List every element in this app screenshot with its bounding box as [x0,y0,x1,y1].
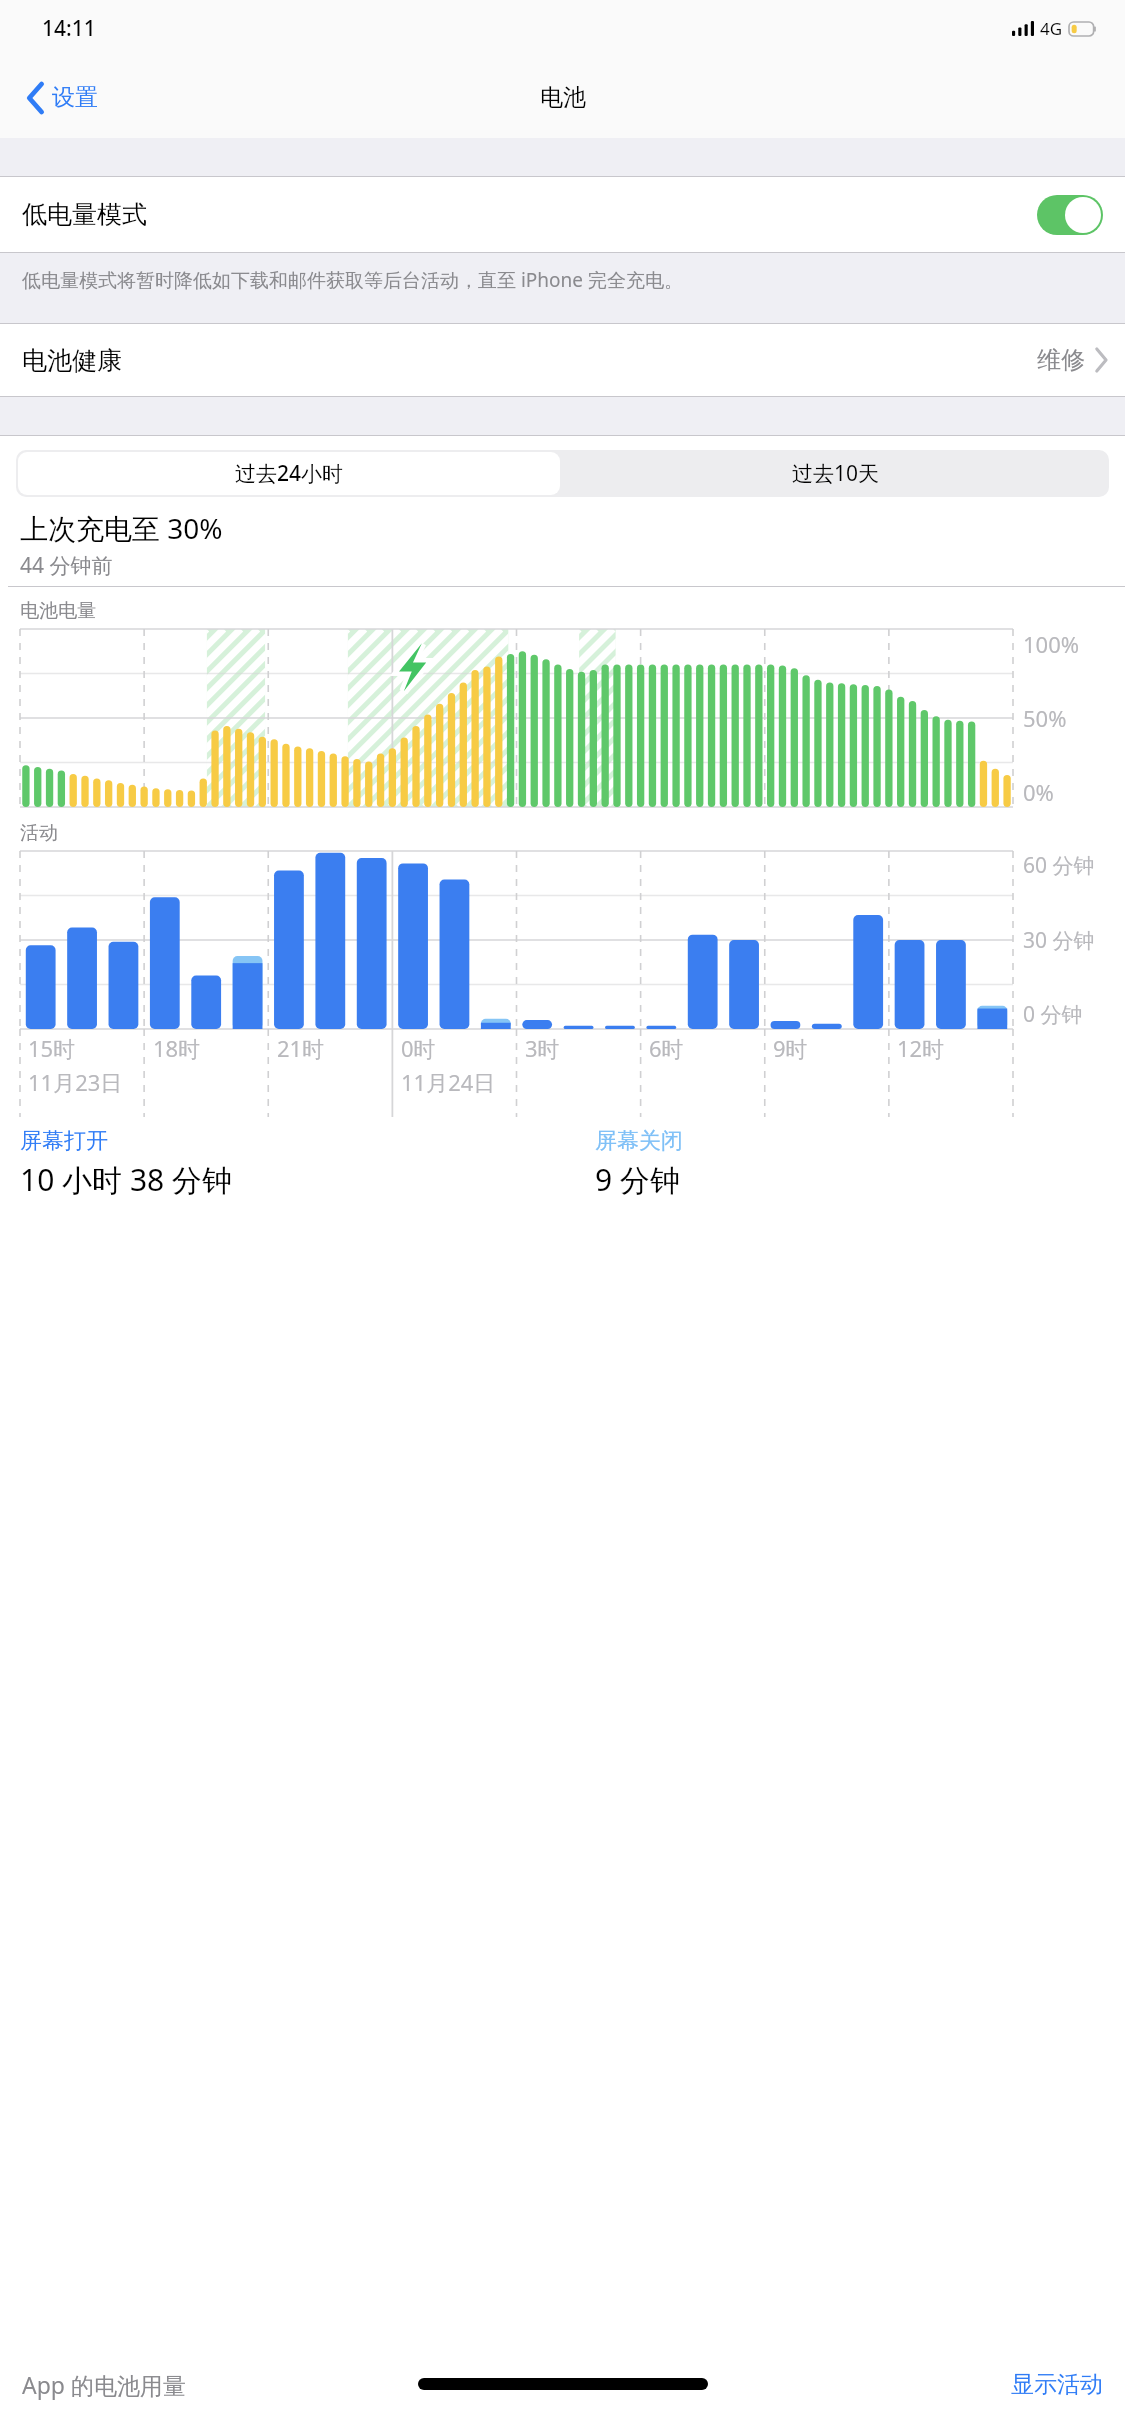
staticText: 50% [1023,703,1067,733]
staticText: 过去10天 [792,459,880,488]
button[interactable]: 过去24小时 [18,452,560,495]
button[interactable]: 屏幕关闭 [595,1127,1125,1200]
staticText: 维修 [1037,345,1085,375]
staticText: 电池健康 [22,345,122,376]
staticText: 12时 [897,1033,945,1063]
button[interactable]: 电池健康 [0,324,1125,396]
staticText: 30 分钟 [1023,926,1095,955]
button[interactable]: App 的电池用量 [22,2369,186,2400]
button[interactable]: 低电量模式开关 [1037,195,1103,235]
staticText: 0 分钟 [1023,1000,1083,1029]
staticText: 3时 [525,1033,560,1063]
staticText: 14:11 [42,14,96,43]
button[interactable]: 显示活动 [1011,2370,1103,2399]
staticText: 低电量模式将暂时降低如下载和邮件获取等后台活动，直至 iPhone 完全充电。 [22,267,683,293]
staticText: 屏幕打开 [20,1127,108,1155]
staticText: 4G [1040,17,1063,40]
staticText: 44 分钟前 [20,551,113,580]
staticText: 11月23日 [28,1067,123,1097]
staticText: 9 分钟 [595,1159,680,1200]
staticText: 15时 [28,1033,76,1063]
staticText: 18时 [153,1033,201,1063]
staticText: 10 小时 38 分钟 [20,1159,233,1200]
staticText: 11月24日 [401,1067,496,1097]
staticText: 活动 [20,821,58,845]
staticText: 21时 [277,1033,325,1063]
staticText: 屏幕关闭 [595,1127,683,1155]
staticText: 6时 [649,1033,684,1063]
staticText: 电池电量 [20,599,96,623]
staticText: 过去24小时 [235,459,344,488]
staticText: 0时 [401,1033,436,1063]
button[interactable]: 低电量模式 [0,177,1125,252]
staticText: 100% [1023,629,1080,659]
staticText: 电池 [540,83,586,112]
button[interactable]: 设置 [22,77,104,118]
staticText: 60 分钟 [1023,851,1095,880]
button[interactable]: 屏幕打开 [20,1127,595,1200]
staticText: 上次充电至 30% [20,509,223,547]
staticText: 设置 [52,83,98,112]
staticText: 9时 [773,1033,808,1063]
staticText: 0% [1023,777,1054,807]
staticText: 低电量模式 [22,199,147,230]
button[interactable]: 过去10天 [562,450,1109,497]
